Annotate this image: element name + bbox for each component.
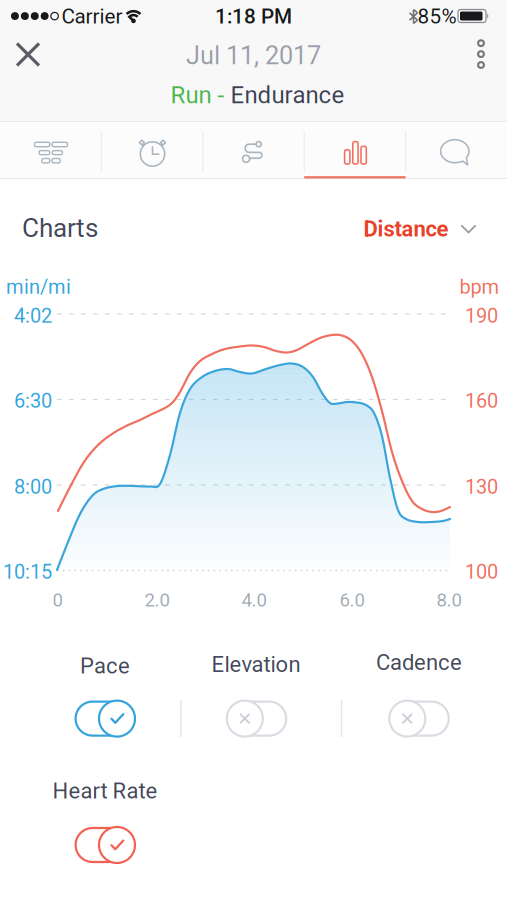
staticText: Elevation [211,652,300,677]
staticText: 100 [465,560,498,584]
button[interactable]: Distance [363,216,476,242]
button[interactable]: More options [459,32,503,76]
staticText: 4.0 [241,589,266,611]
button[interactable]: Route [203,121,304,178]
staticText: Pace [80,653,130,679]
staticText: 130 [465,475,498,499]
staticText: 0 [52,589,62,611]
staticText: Jul 11, 2017 [186,41,321,70]
staticText: 8.0 [436,589,461,611]
button[interactable]: Comments [406,121,507,178]
staticText: 8:00 [14,475,52,499]
staticText: Distance [363,216,448,242]
button[interactable]: Charts [304,121,406,178]
button[interactable]: Splits [101,121,203,178]
staticText: 4:02 [14,304,52,328]
staticText: Heart Rate [52,778,157,804]
button[interactable]: Close [6,32,50,76]
button[interactable]: Summary [0,121,101,178]
staticText: 85% [417,4,456,29]
button[interactable]: Heart Rate [72,823,138,867]
button[interactable]: Cadence [386,697,452,741]
staticText: 10:15 [3,560,52,584]
staticText: Cadence [376,650,462,675]
staticText: 6.0 [339,589,364,611]
staticText: 2.0 [144,589,169,611]
staticText: Carrier [61,4,122,29]
button[interactable]: Elevation [223,697,289,741]
staticText: 190 [465,304,498,328]
button[interactable]: Pace [72,697,138,741]
staticText: Endurance [230,81,344,109]
staticText: 6:30 [14,389,52,413]
staticText: Charts [22,213,98,243]
staticText: 1:18 PM [215,4,292,29]
staticText: 160 [465,389,498,413]
staticText: min/mi [6,275,71,299]
staticText: Run - [170,81,230,109]
staticText: bpm [459,275,499,299]
